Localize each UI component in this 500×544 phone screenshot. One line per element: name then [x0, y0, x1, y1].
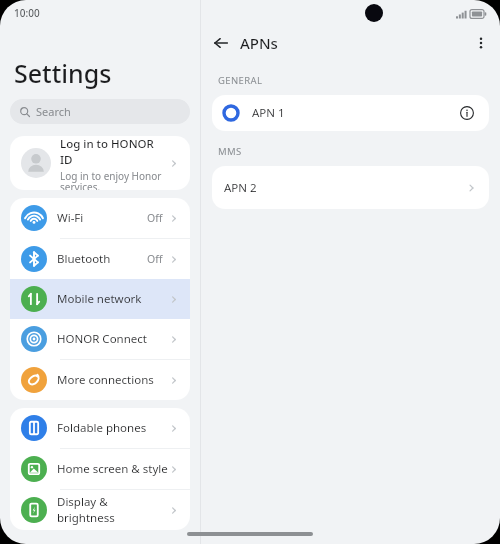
- button[interactable]: Back: [208, 30, 234, 56]
- staticText: GENERAL: [218, 74, 263, 87]
- button[interactable]: More options: [468, 30, 494, 56]
- staticText: Log in to HONOR ID: [60, 136, 168, 168]
- button[interactable]: Wi-Fi: [10, 198, 190, 238]
- button[interactable]: Search: [10, 99, 190, 124]
- staticText: 10:00: [14, 6, 40, 20]
- staticText: More connections: [57, 372, 168, 388]
- button[interactable]: Mobile network: [10, 279, 190, 319]
- staticText: MMS: [218, 145, 242, 158]
- staticText: Off: [147, 211, 163, 225]
- staticText: Mobile network: [57, 291, 168, 307]
- staticText: APN 1: [252, 105, 457, 121]
- button[interactable]: Foldable phones: [10, 408, 190, 448]
- staticText: Foldable phones: [57, 420, 168, 436]
- staticText: Search: [36, 104, 71, 119]
- staticText: Display & brightness: [57, 494, 168, 526]
- button[interactable]: HONOR Connect: [10, 319, 190, 359]
- button[interactable]: Bluetooth: [10, 239, 190, 279]
- button[interactable]: Home screen & style: [10, 449, 190, 489]
- button[interactable]: More connections: [10, 360, 190, 400]
- staticText: Settings: [14, 56, 112, 90]
- button[interactable]: Log in to HONOR ID: [10, 136, 190, 190]
- staticText: HONOR Connect: [57, 331, 168, 347]
- staticText: Off: [147, 252, 163, 266]
- staticText: Log in to enjoy Honor services.: [60, 169, 162, 190]
- staticText: Bluetooth: [57, 251, 147, 267]
- staticText: APNs: [240, 33, 278, 53]
- staticText: Wi-Fi: [57, 210, 147, 226]
- button[interactable]: Display & brightness: [10, 490, 190, 530]
- button[interactable]: APN 2: [212, 166, 489, 209]
- staticText: APN 2: [224, 180, 465, 196]
- button[interactable]: APN 1 info: [457, 103, 477, 123]
- button[interactable]: APN 1: [212, 95, 489, 131]
- staticText: Home screen & style: [57, 461, 168, 477]
